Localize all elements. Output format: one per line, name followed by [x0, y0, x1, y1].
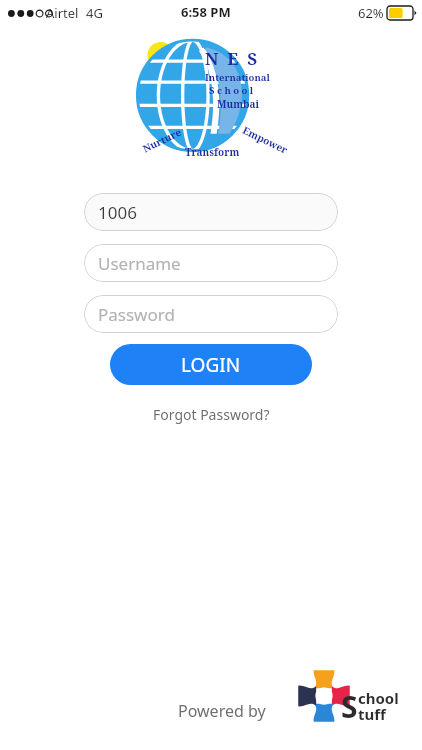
staticText: LOGIN: [181, 352, 241, 378]
staticText: Mumbai: [217, 97, 260, 111]
staticText: 6:58 PM: [181, 3, 231, 21]
staticText: tuff: [358, 704, 386, 724]
button[interactable]: Forgot Password?: [140, 403, 282, 425]
button[interactable]: 1006: [84, 193, 338, 231]
button[interactable]: Password: [84, 295, 338, 333]
staticText: Forgot Password?: [153, 405, 270, 424]
staticText: 62%: [358, 4, 384, 22]
staticText: Password: [98, 303, 175, 326]
button[interactable]: LOGIN: [110, 344, 312, 385]
staticText: Airtel: [46, 4, 79, 22]
staticText: Empower: [240, 123, 291, 157]
staticText: S: [341, 686, 358, 727]
staticText: 1006: [98, 201, 137, 224]
staticText: S c h o o l: [209, 84, 254, 97]
button[interactable]: Username: [84, 244, 338, 282]
staticText: N E S: [205, 47, 258, 70]
staticText: Transform: [185, 145, 240, 159]
staticText: 4G: [86, 4, 103, 22]
staticText: Username: [98, 252, 181, 275]
staticText: Nurture: [140, 124, 184, 155]
staticText: Powered by: [178, 700, 266, 722]
staticText: International: [205, 71, 270, 84]
staticText: chool: [358, 688, 399, 708]
